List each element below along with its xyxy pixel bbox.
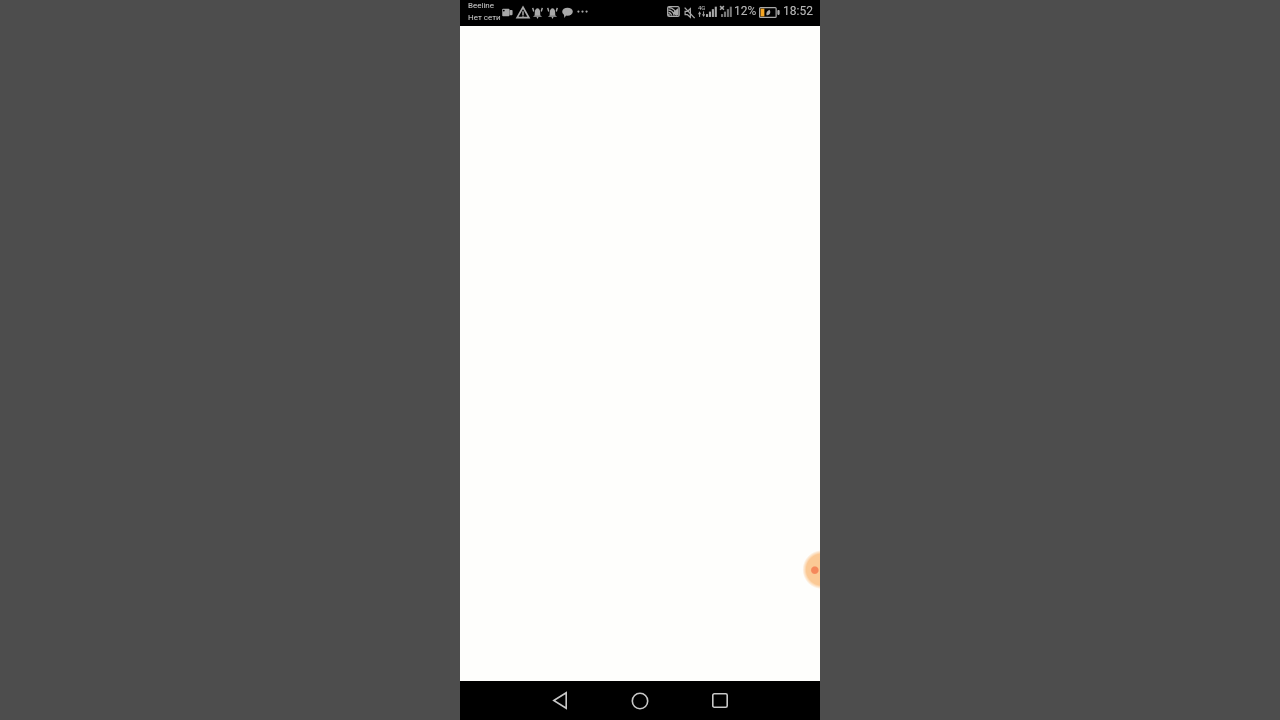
staticText: 12% [734,4,757,18]
button[interactable]: Back [532,681,588,720]
button[interactable]: Home [612,681,668,720]
button[interactable]: Recent apps [692,681,748,720]
staticText: Beeline [468,1,495,10]
button[interactable]: Page content [460,26,820,681]
staticText: Нет сети [468,13,501,22]
staticText: 18:52 [783,4,813,18]
staticText: 4G [698,4,706,11]
